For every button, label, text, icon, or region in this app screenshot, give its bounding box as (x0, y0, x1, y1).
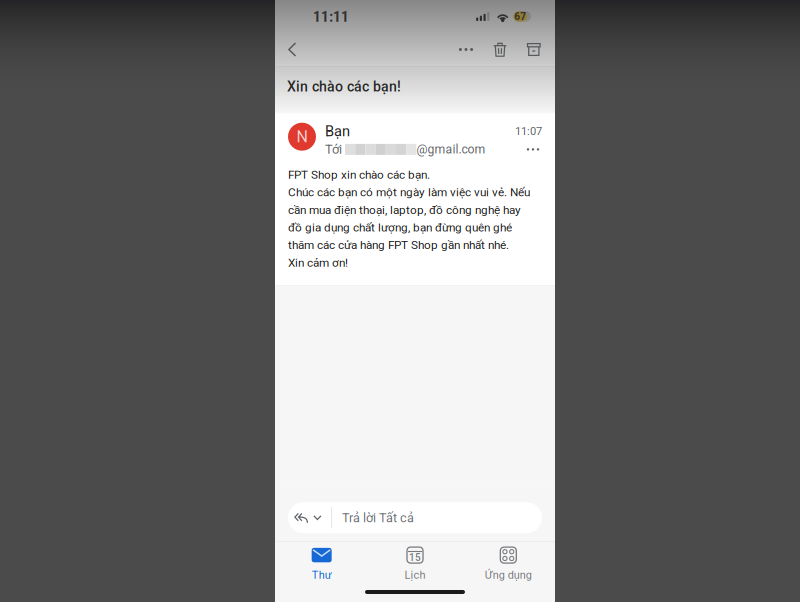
staticText: Thư (312, 569, 332, 581)
button[interactable]: Back (279, 33, 305, 66)
staticText: Lịch (404, 569, 425, 581)
button[interactable]: Message details (524, 143, 542, 156)
staticText: Xin chào các bạn! (287, 78, 401, 95)
staticText: 15 (409, 552, 421, 563)
staticText: Ứng dụng (485, 569, 532, 581)
button[interactable]: More options (449, 33, 483, 66)
button[interactable]: Ứng dụng (462, 541, 555, 583)
staticText: 11:11 (313, 7, 349, 25)
button[interactable]: Reply all options (288, 502, 331, 533)
staticText: N (296, 127, 307, 146)
staticText: Trả lời Tất cả (342, 510, 414, 525)
button[interactable]: Thư (275, 541, 368, 583)
button[interactable]: 15 (368, 541, 462, 583)
staticText: Bạn (325, 123, 350, 140)
staticText: FPT Shop xin chào các bạn. Chúc các bạn … (288, 166, 530, 271)
button[interactable]: Trả lời Tất cả (332, 502, 542, 533)
button[interactable]: Delete (483, 33, 517, 66)
button[interactable]: Archive (517, 33, 551, 66)
staticText: 67 (514, 11, 526, 22)
staticText: @gmail.com (416, 142, 485, 157)
staticText: Tới (325, 142, 345, 157)
staticText: 11:07 (515, 125, 542, 138)
